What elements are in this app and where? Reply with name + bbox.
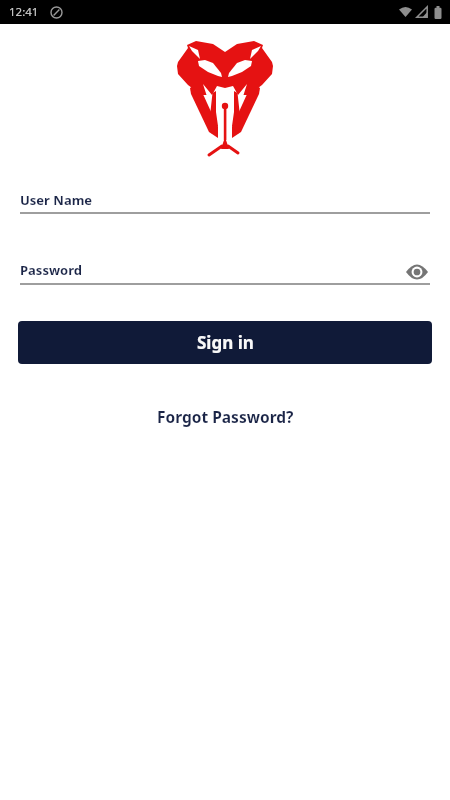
staticText: Forgot Password? — [157, 406, 294, 427]
staticText: 12:41 — [9, 4, 39, 20]
button[interactable] — [406, 264, 428, 280]
button[interactable]: Sign in — [18, 321, 432, 364]
staticText: Sign in — [197, 331, 254, 354]
staticText: Password — [20, 261, 82, 279]
staticText: User Name — [20, 191, 93, 209]
button[interactable]: Forgot Password? — [153, 402, 298, 431]
